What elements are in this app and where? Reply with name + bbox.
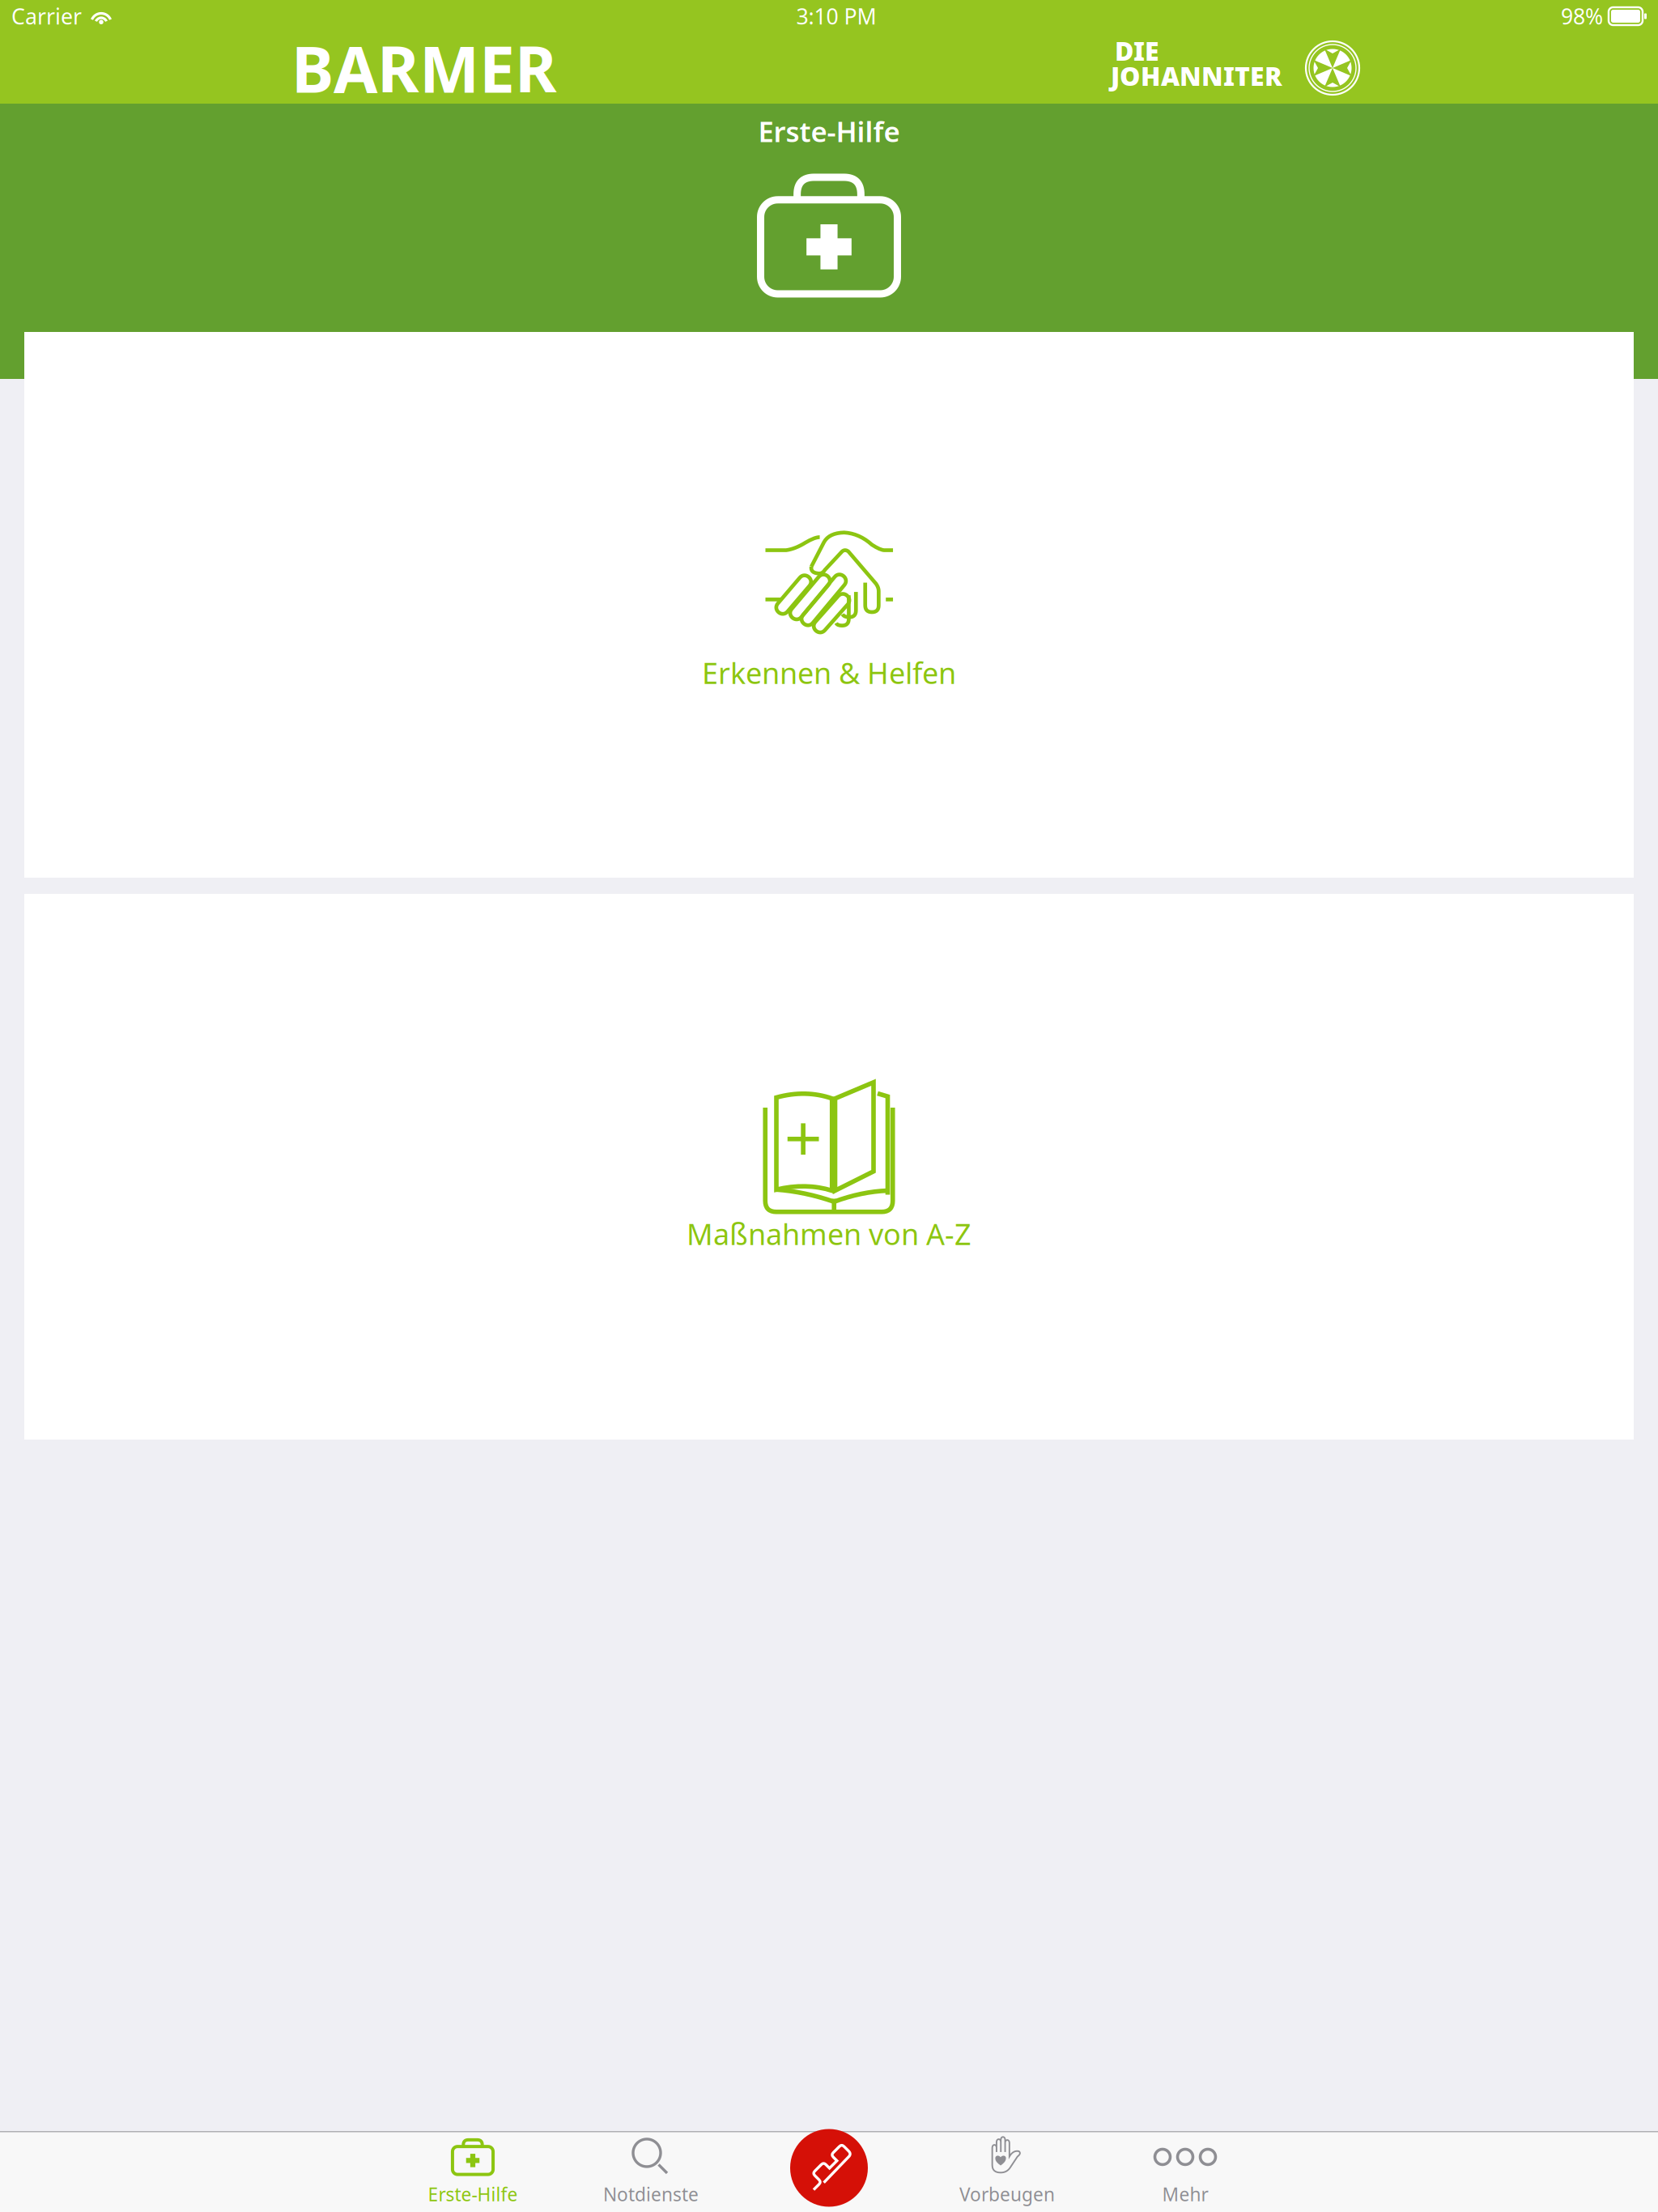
button[interactable]: Notdienste — [562, 2131, 740, 2212]
staticText: 98% — [1561, 2, 1603, 31]
button[interactable]: Mehr — [1096, 2131, 1274, 2212]
staticText: BARMER — [291, 26, 557, 110]
staticText: Maßnahmen von A-Z — [687, 1214, 971, 1253]
staticText: Vorbeugen — [959, 2182, 1055, 2206]
staticText: Mehr — [1162, 2182, 1208, 2206]
staticText: Erste-Hilfe — [428, 2182, 518, 2206]
button[interactable]: Vorbeugen — [918, 2131, 1096, 2212]
button[interactable]: Notruf — [790, 2129, 868, 2207]
staticText: DIE — [1115, 33, 1159, 68]
button[interactable]: Erste-Hilfe — [384, 2131, 562, 2212]
staticText: JOHANNITER — [1111, 59, 1282, 93]
staticText: Carrier — [11, 2, 82, 31]
staticText: Notdienste — [603, 2182, 699, 2206]
staticText: 3:10 PM — [796, 2, 876, 31]
staticText: Erkennen & Helfen — [702, 653, 956, 692]
button[interactable]: Erkennen & Helfen — [24, 332, 1634, 878]
button[interactable]: Maßnahmen von A-Z — [24, 894, 1634, 1440]
staticText: Erste-Hilfe — [758, 113, 900, 150]
